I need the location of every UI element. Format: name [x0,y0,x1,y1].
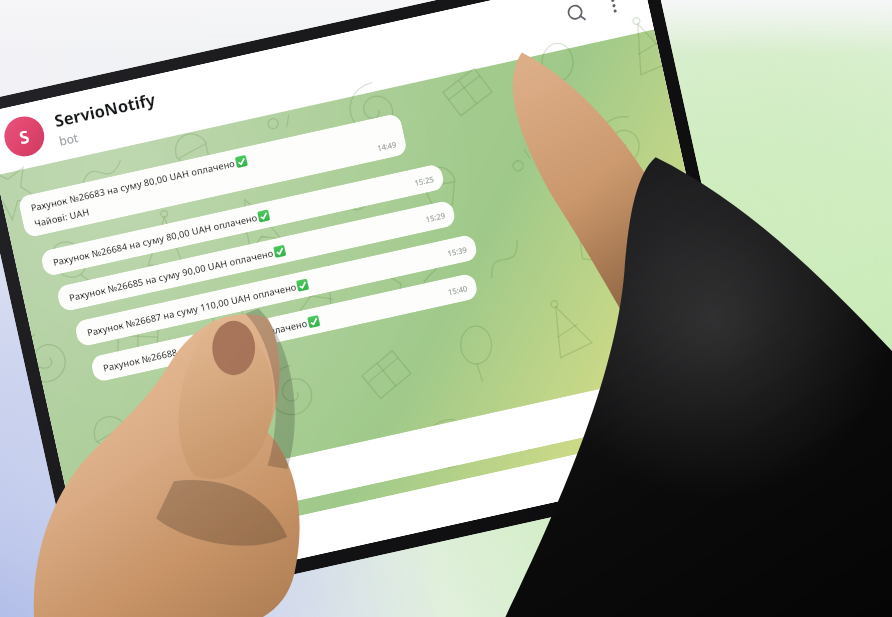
button[interactable]: More options [592,0,635,27]
staticText: 14:49 [376,139,398,153]
button[interactable]: Voice message [661,364,716,419]
staticText: bot [57,129,79,149]
staticText: Рахунок №26683 на суму 80,00 UAH оплачен… [30,157,236,214]
staticText: Рахунок №26684 на суму 80,00 UAH оплачен… [52,211,259,269]
staticText: Message [161,489,217,517]
button[interactable]: Keyboard [85,377,662,546]
staticText: S [17,125,32,149]
staticText: 15:39 [447,244,468,258]
button[interactable]: Рахунок №26683 на суму 80,00 UAH оплачен… [17,113,408,238]
staticText: Чайові: UAH [33,205,90,230]
button[interactable]: S [0,112,48,160]
staticText: 15:40 [447,283,469,297]
staticText: 15:29 [425,210,446,224]
button[interactable]: Рахунок №26688 на суму 85,00 UAH оплачен… [90,272,479,383]
staticText: Рахунок №26687 на суму 110,00 UAH оплаче… [86,280,298,339]
staticText: Рахунок №26688 на суму 85,00 UAH оплачен… [102,317,309,375]
button[interactable]: Рахунок №26684 на суму 80,00 UAH оплачен… [40,163,445,277]
button[interactable]: Рахунок №26687 на суму 110,00 UAH оплаче… [74,234,479,347]
staticText: ServioNotify [52,87,157,131]
button[interactable]: Search [553,0,601,38]
staticText: 15:25 [414,174,435,188]
staticText: Рахунок №26685 на суму 90,00 UAH оплачен… [68,246,275,304]
button[interactable]: Рахунок №26685 на суму 90,00 UAH оплачен… [56,199,457,312]
button[interactable]: ServioNotify [52,0,562,149]
